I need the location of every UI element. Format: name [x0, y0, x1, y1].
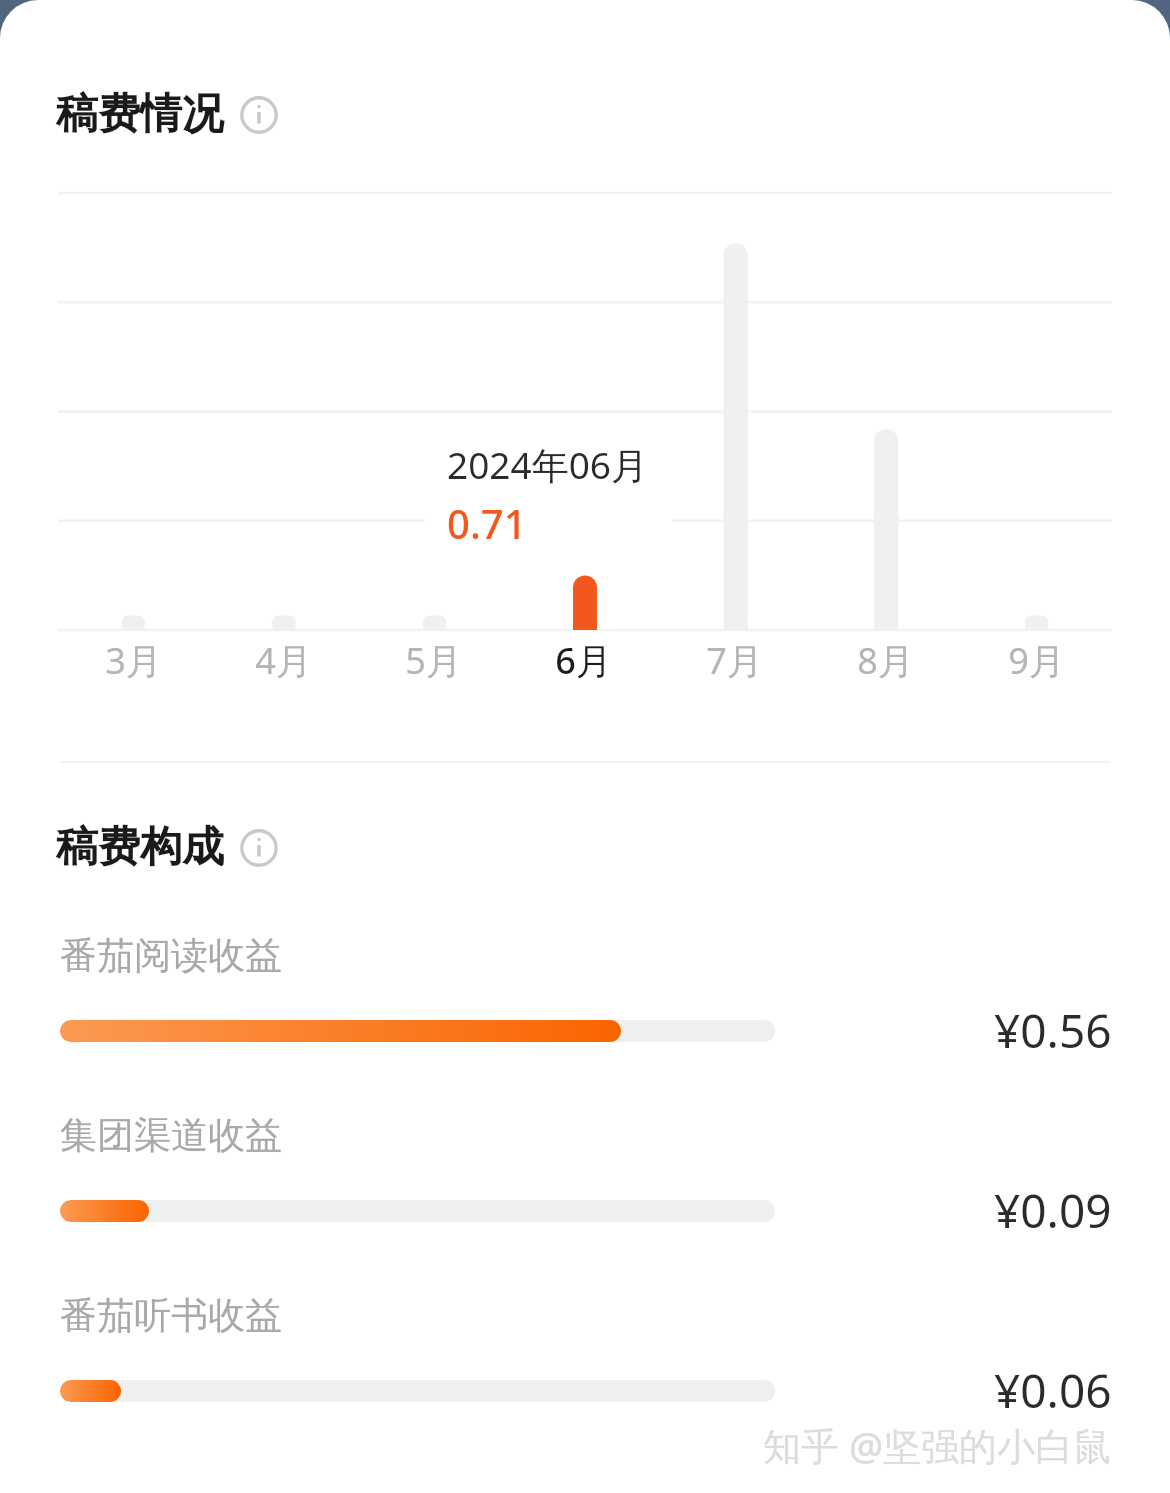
button[interactable]: 7月: [659, 636, 810, 685]
button[interactable]: 5月: [358, 636, 508, 685]
staticText: 8月: [857, 636, 914, 685]
staticText: 番茄阅读收益: [60, 932, 282, 979]
staticText: 3月: [105, 636, 162, 685]
staticText: 4月: [255, 636, 312, 685]
button[interactable]: 8月: [810, 636, 961, 685]
staticText: ¥0.09: [994, 1179, 1112, 1242]
staticText: 5月: [405, 636, 462, 685]
staticText: 2024年06月: [447, 439, 648, 490]
button[interactable]: 集团渠道收益: [0, 1112, 1170, 1242]
button[interactable]: 2024年06月: [425, 423, 672, 559]
button[interactable]: 3月: [58, 636, 208, 685]
staticText: 稿费情况: [56, 88, 224, 141]
button[interactable]: 4月: [208, 636, 358, 685]
button[interactable]: 番茄阅读收益: [0, 932, 1170, 1062]
staticText: ¥0.56: [994, 999, 1112, 1062]
staticText: 番茄听书收益: [60, 1292, 282, 1339]
button[interactable]: 9月: [961, 636, 1112, 685]
staticText: 7月: [706, 636, 763, 685]
staticText: 9月: [1008, 636, 1065, 685]
staticText: 稿费构成: [56, 821, 224, 874]
button[interactable]: 稿费情况: [56, 88, 278, 141]
staticText: 6月: [555, 636, 612, 685]
staticText: 0.71: [447, 496, 527, 550]
button[interactable]: More information: [240, 829, 278, 867]
button[interactable]: 6月: [508, 636, 659, 685]
button[interactable]: 稿费构成: [56, 821, 278, 874]
button[interactable]: More information: [240, 96, 278, 134]
staticText: ¥0.06: [994, 1359, 1112, 1422]
staticText: 知乎 @坚强的小白鼠: [763, 1419, 1112, 1471]
staticText: 集团渠道收益: [60, 1112, 282, 1159]
button[interactable]: 番茄听书收益: [0, 1292, 1170, 1422]
